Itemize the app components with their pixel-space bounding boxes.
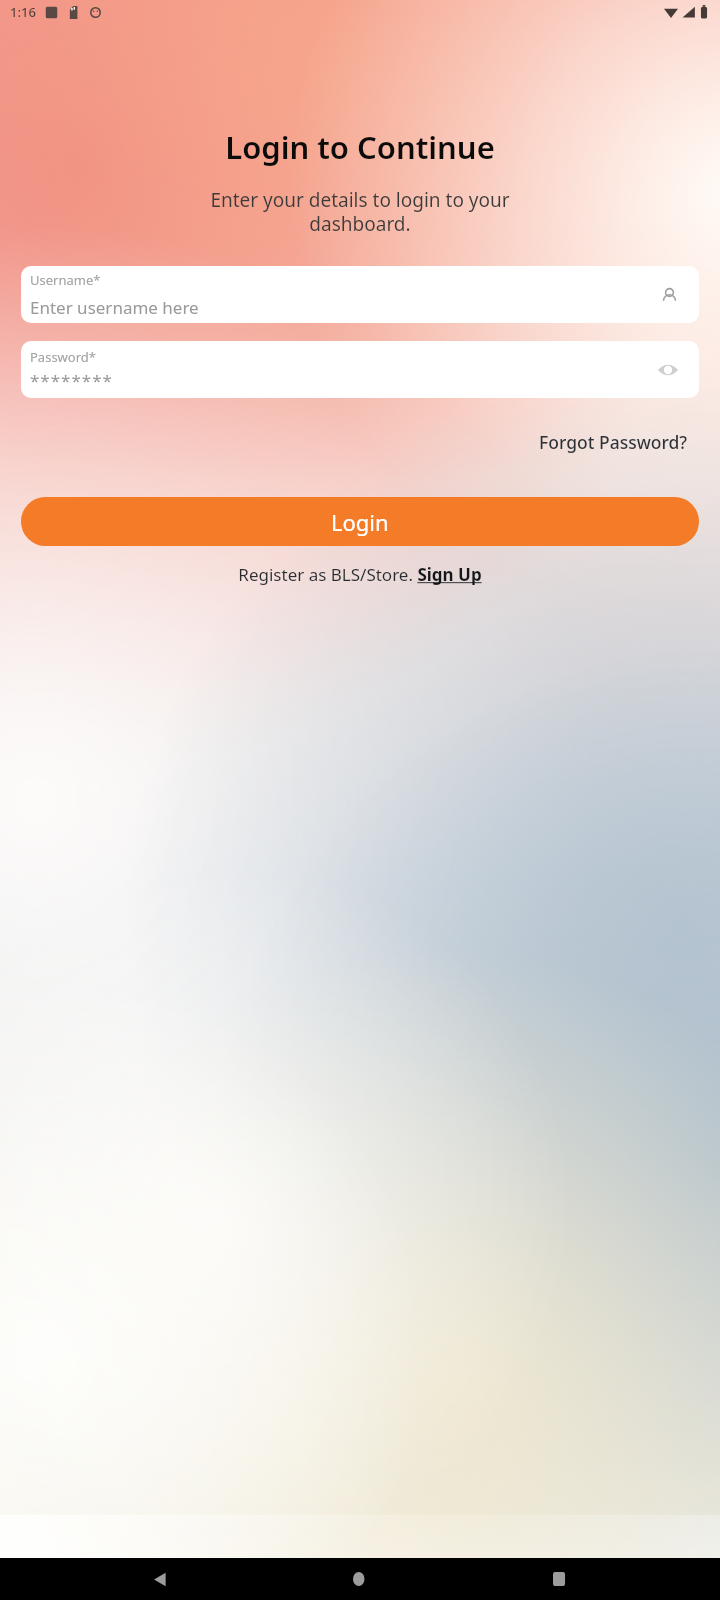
button[interactable]: Back (140, 1559, 180, 1599)
staticText: Enter your details to login to your dash… (24, 187, 696, 236)
button[interactable]: Register as BLS/Store. Sign Up (230, 559, 490, 590)
staticText: Login to Continue (0, 126, 720, 168)
other: Username (662, 287, 677, 302)
staticText: Forgot Password? (539, 430, 688, 454)
button[interactable]: Login (21, 497, 699, 546)
button[interactable]: Forgot Password? (535, 426, 692, 458)
button[interactable]: Home (340, 1559, 380, 1599)
staticText: Login (331, 507, 389, 537)
staticText: Register as BLS/Store. Sign Up (238, 563, 482, 586)
staticText: Password* (30, 348, 96, 366)
staticText: 1:16 (10, 3, 36, 21)
staticText: Enter username here (30, 296, 199, 319)
button[interactable]: Recent apps (540, 1559, 580, 1599)
staticText: ******** (30, 369, 113, 392)
button[interactable]: Username* (21, 266, 699, 323)
staticText: Username* (30, 271, 101, 289)
button[interactable]: Password* (21, 341, 699, 398)
button[interactable]: Show password (657, 359, 679, 381)
